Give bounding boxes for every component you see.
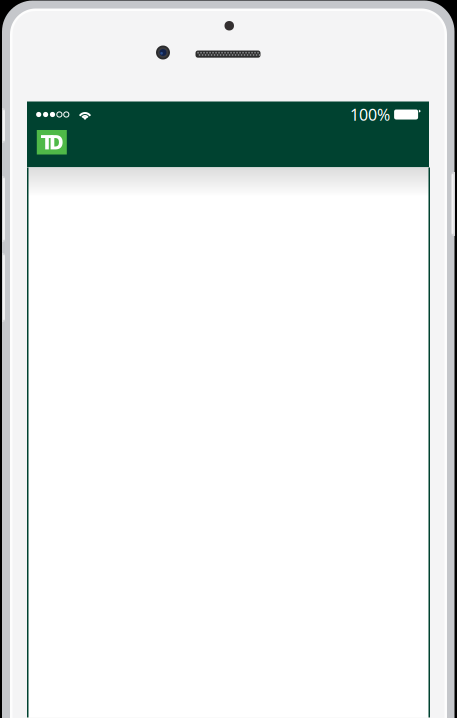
button[interactable]: TD Home [37, 130, 67, 154]
staticText: 100% [350, 104, 390, 125]
